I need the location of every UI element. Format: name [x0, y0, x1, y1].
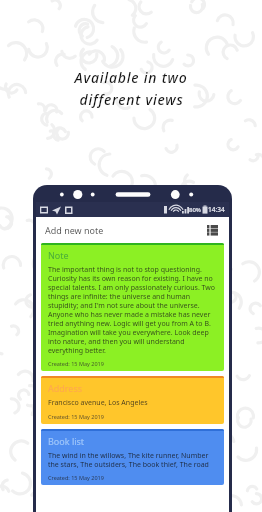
- staticText: Available in two: [74, 68, 188, 87]
- button[interactable]: Book list: [41, 429, 224, 485]
- button[interactable]: Address: [41, 376, 224, 424]
- staticText: 14:34: [208, 205, 225, 214]
- staticText: Note: [48, 249, 69, 261]
- staticText: Created: 15 May 2019: [48, 474, 104, 481]
- staticText: The wind in the willows, The kite runner…: [48, 451, 217, 469]
- staticText: The important thing is not to stop quest…: [48, 265, 217, 355]
- staticText: Created: 15 May 2019: [48, 360, 104, 367]
- staticText: Address: [48, 382, 83, 394]
- staticText: Created: 15 May 2019: [48, 413, 104, 420]
- staticText: Francisco avenue, Los Angeles: [48, 398, 148, 408]
- staticText: 80%: [189, 206, 201, 214]
- staticText: different views: [79, 90, 184, 109]
- staticText: Add new note: [45, 224, 104, 236]
- staticText: Book list: [48, 435, 85, 447]
- button[interactable]: Toggle list or grid view: [203, 221, 221, 239]
- button[interactable]: Note: [41, 243, 224, 371]
